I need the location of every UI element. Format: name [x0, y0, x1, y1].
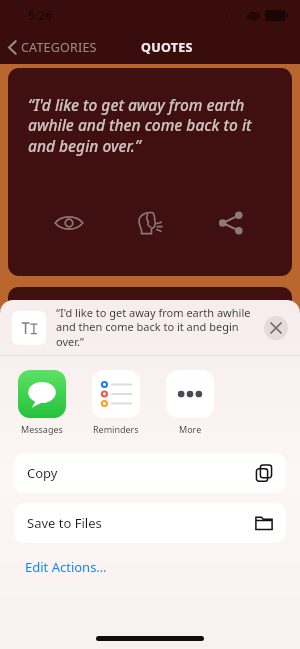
staticText: Messages [21, 423, 63, 435]
button[interactable] [12, 311, 46, 345]
staticText: Edit Actions… [25, 558, 107, 576]
staticText: “I'd like to get away from earth awhile … [56, 305, 256, 350]
staticText: CATEGORIES [21, 39, 97, 56]
staticText: “I'd like to get away from earth awhile … [28, 94, 274, 157]
button[interactable] [8, 287, 292, 311]
button[interactable]: Close [264, 316, 288, 340]
staticText: QUOTES [141, 39, 193, 56]
button[interactable]: Speak [130, 203, 170, 243]
button[interactable]: More [162, 368, 218, 437]
staticText: Save to Files [27, 514, 255, 532]
button[interactable]: Reminders [88, 368, 144, 437]
staticText: More [179, 423, 202, 435]
button[interactable]: Save to Files [14, 503, 286, 543]
button[interactable]: Messages [14, 368, 70, 437]
button[interactable]: “I'd like to get away from earth awhile … [8, 68, 292, 276]
button[interactable]: View [49, 203, 89, 243]
button[interactable]: Edit Actions… [25, 555, 107, 579]
staticText: Reminders [93, 423, 139, 435]
staticText: Copy [27, 464, 255, 482]
button[interactable]: CATEGORIES [0, 35, 103, 60]
button[interactable]: Share [211, 203, 251, 243]
button[interactable]: QUOTES [137, 35, 197, 60]
button[interactable]: Copy [14, 453, 286, 493]
staticText: 5:26 [28, 7, 52, 23]
